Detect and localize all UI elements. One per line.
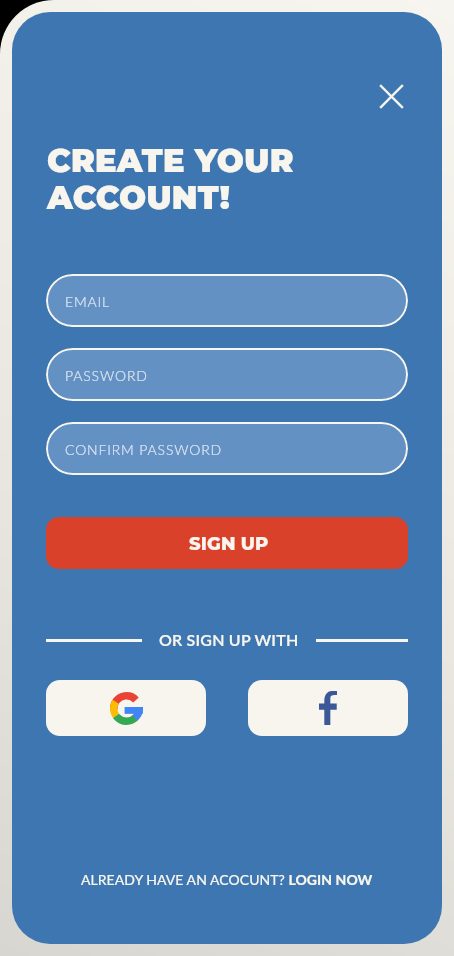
button[interactable]: Close xyxy=(369,74,413,118)
button[interactable]: PASSWORD xyxy=(46,348,408,401)
staticText: CONFIRM PASSWORD xyxy=(65,441,223,458)
button[interactable]: ALREADY HAVE AN ACOCUNT? LOGIN NOW xyxy=(12,862,442,896)
button[interactable]: Sign up with Google xyxy=(46,680,206,736)
staticText: ALREADY HAVE AN ACOCUNT? LOGIN NOW xyxy=(81,871,373,888)
staticText: SIGN UP xyxy=(189,533,269,555)
staticText: PASSWORD xyxy=(65,367,148,384)
staticText: CREATE YOUR ACCOUNT! xyxy=(47,141,294,217)
button[interactable]: CONFIRM PASSWORD xyxy=(46,422,408,475)
staticText: OR SIGN UP WITH xyxy=(159,630,299,649)
button[interactable]: EMAIL xyxy=(46,274,408,327)
button[interactable]: SIGN UP xyxy=(46,517,408,569)
button[interactable]: Sign up with Facebook xyxy=(248,680,408,736)
staticText: EMAIL xyxy=(65,293,110,310)
